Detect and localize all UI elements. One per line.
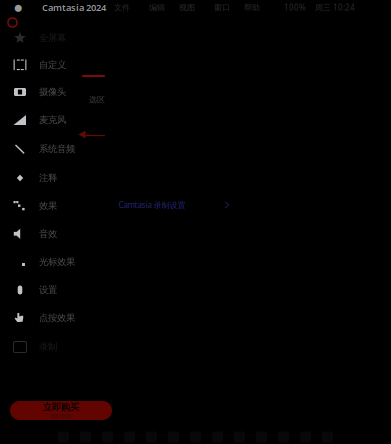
button[interactable]: 点按效果	[0, 308, 110, 328]
staticText: 周三 10:24	[315, 2, 355, 13]
staticText: 光标效果	[39, 256, 75, 268]
staticText: 帮助	[244, 3, 260, 12]
staticText: 立即购买	[43, 401, 79, 413]
button[interactable]: 摄像头	[0, 82, 110, 102]
button[interactable]: 注释	[0, 168, 110, 188]
button[interactable]: 光标效果	[0, 252, 110, 272]
button[interactable]: 自定义	[0, 55, 110, 75]
button[interactable]: 设置	[0, 280, 110, 300]
staticText: 麦克风	[39, 114, 66, 126]
staticText: Camtasia 2024	[42, 1, 106, 14]
button[interactable]: 音效	[0, 224, 110, 244]
button[interactable]: 全屏幕	[0, 28, 110, 48]
button[interactable]: 立即购买	[10, 401, 112, 420]
staticText: 摄像头	[39, 86, 66, 98]
staticText: 注释	[39, 172, 57, 184]
staticText: 系统音频	[39, 143, 75, 155]
staticText: ●	[14, 2, 22, 13]
staticText: 效果	[39, 200, 57, 212]
staticText: 音效	[39, 228, 57, 240]
staticText: 自定义	[39, 59, 66, 71]
staticText: 全屏幕	[39, 32, 66, 44]
button[interactable]: 系统音频	[0, 139, 110, 159]
staticText: 选区	[89, 95, 105, 104]
staticText: 100%	[284, 2, 306, 13]
staticText: 录制	[39, 341, 57, 353]
staticText: 窗口	[214, 3, 230, 12]
staticText: 视图	[179, 3, 195, 12]
staticText: 文件	[114, 3, 130, 12]
staticText: Camtasia 录制设置	[118, 200, 185, 210]
button[interactable]: 麦克风	[0, 110, 110, 130]
button[interactable]: 录制	[0, 337, 110, 357]
staticText: 编辑	[149, 3, 165, 12]
staticText: 设置	[39, 284, 57, 296]
staticText: 限时优惠	[51, 413, 71, 420]
staticText: 点按效果	[39, 312, 75, 324]
button[interactable]: 效果	[0, 196, 110, 216]
